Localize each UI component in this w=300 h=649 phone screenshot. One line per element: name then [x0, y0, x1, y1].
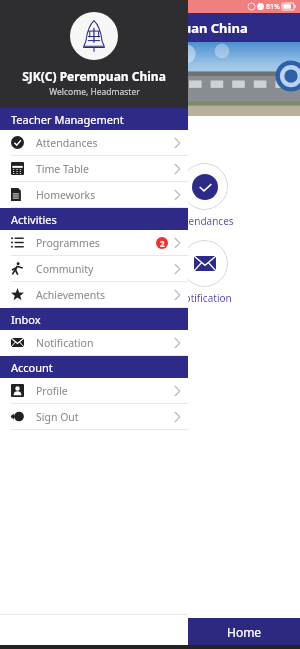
staticText: Notification — [177, 291, 232, 305]
staticText: 2 — [160, 238, 165, 249]
button[interactable]: Home — [188, 618, 300, 645]
button[interactable]: Community — [0, 256, 188, 282]
button[interactable]: Time Table — [0, 156, 188, 182]
staticText: Time Table — [36, 162, 89, 176]
staticText: SJK(C) Perempuan China — [92, 19, 248, 37]
button[interactable]: Notification — [0, 330, 188, 356]
button[interactable]: Programmes — [0, 230, 188, 256]
staticText: Welcome, Headmaster — [49, 86, 140, 98]
staticText: Home — [227, 624, 262, 640]
staticText: Profile — [36, 384, 68, 398]
staticText: Notification — [36, 336, 94, 350]
staticText: Attendances — [175, 214, 234, 228]
staticText: Achievements — [36, 288, 105, 302]
staticText: Attendances — [36, 136, 98, 150]
staticText: Inbox — [11, 312, 41, 327]
staticText: Programmes — [36, 236, 100, 250]
staticText: Homeworks — [36, 188, 96, 202]
button[interactable]: Homeworks — [0, 182, 188, 208]
staticText: SJK(C) Perempuan China — [22, 68, 166, 84]
staticText: Sign Out — [36, 410, 79, 424]
button[interactable]: Attendances — [0, 130, 188, 156]
button[interactable]: Sign Out — [0, 404, 188, 430]
staticText: Activities — [11, 212, 57, 227]
staticText: 81% — [266, 2, 280, 12]
staticText: Community — [36, 262, 94, 276]
button[interactable]: Attendances — [0, 163, 300, 228]
staticText: Teacher Management — [11, 112, 124, 127]
button[interactable]: Notification — [0, 240, 300, 305]
button[interactable]: Profile — [0, 378, 188, 404]
button[interactable]: Achievements — [0, 282, 188, 308]
staticText: Welcome, Headmaster — [14, 130, 172, 149]
staticText: Account — [11, 360, 53, 375]
